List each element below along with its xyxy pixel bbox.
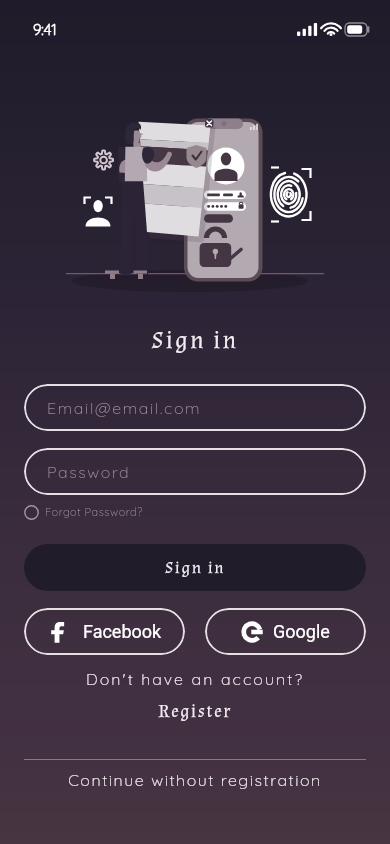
staticText: Email@email.com	[47, 398, 202, 418]
button[interactable]: Continue without registration	[0, 770, 390, 790]
button[interactable]: Facebook	[24, 608, 185, 655]
button[interactable]: Sign in	[24, 544, 366, 591]
staticText: Sign in	[165, 557, 226, 579]
staticText: Password	[47, 462, 131, 482]
staticText: Facebook	[83, 621, 162, 642]
staticText: Forgot Password?	[45, 505, 143, 519]
button[interactable]: Password	[24, 448, 366, 495]
button[interactable]: Email@email.com	[24, 384, 366, 431]
button[interactable]: Forgot Password?	[24, 502, 143, 522]
staticText: 9:41	[33, 20, 57, 39]
button[interactable]: Google	[205, 608, 366, 655]
staticText: Sign in	[0, 324, 390, 356]
staticText: Google	[273, 621, 330, 642]
staticText: Don't have an account?	[0, 669, 390, 689]
button[interactable]: Register	[0, 700, 390, 723]
